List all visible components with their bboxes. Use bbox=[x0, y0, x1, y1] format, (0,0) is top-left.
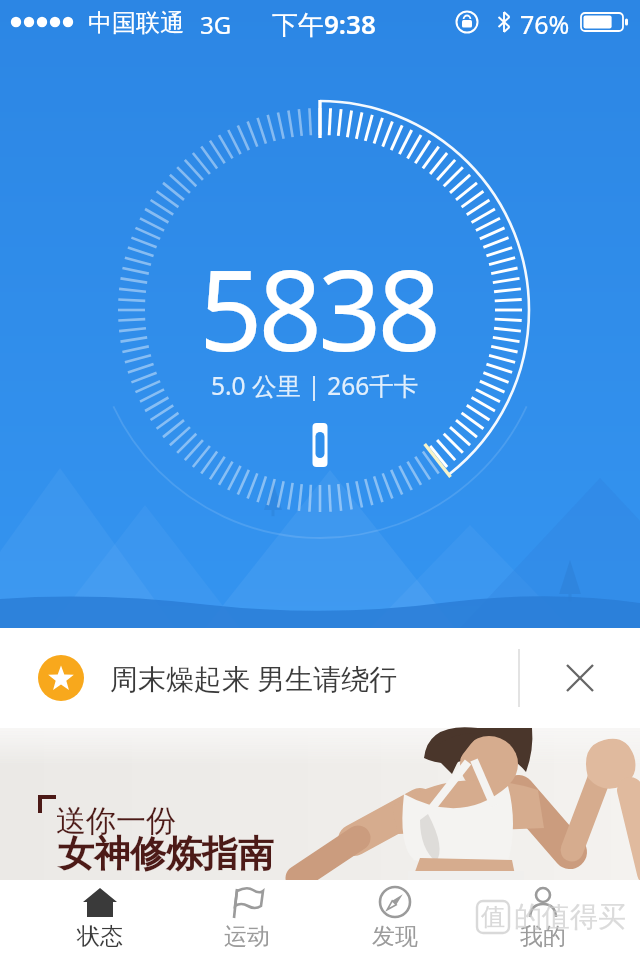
staticText: 5.0 公里 | 266千卡 bbox=[211, 369, 419, 402]
staticText: 我的 bbox=[520, 922, 566, 951]
staticText: 状态 bbox=[77, 922, 123, 951]
staticText: 76% bbox=[520, 7, 570, 41]
button[interactable]: 运动 bbox=[173, 880, 321, 960]
staticText: 下午9:38 bbox=[272, 6, 376, 42]
button[interactable]: 周末燥起来 男生请绕行 bbox=[0, 628, 640, 728]
staticText: 中国联通 bbox=[88, 8, 184, 38]
staticText: 5838 bbox=[199, 232, 437, 383]
staticText: 的值得买 bbox=[514, 899, 626, 934]
button[interactable]: 我的 bbox=[469, 880, 617, 960]
button[interactable]: 状态 bbox=[26, 880, 173, 960]
staticText: 值 bbox=[481, 902, 505, 932]
button[interactable]: 送你一份 bbox=[0, 728, 640, 880]
staticText: 发现 bbox=[372, 922, 418, 951]
staticText: 送你一份 bbox=[56, 802, 176, 840]
staticText: 3G bbox=[200, 8, 232, 41]
button[interactable]: 发现 bbox=[321, 880, 469, 960]
staticText: 运动 bbox=[224, 922, 270, 951]
button[interactable] bbox=[520, 628, 640, 728]
staticText: 女神修炼指南 bbox=[58, 831, 274, 876]
staticText: 周末燥起来 男生请绕行 bbox=[110, 659, 398, 697]
